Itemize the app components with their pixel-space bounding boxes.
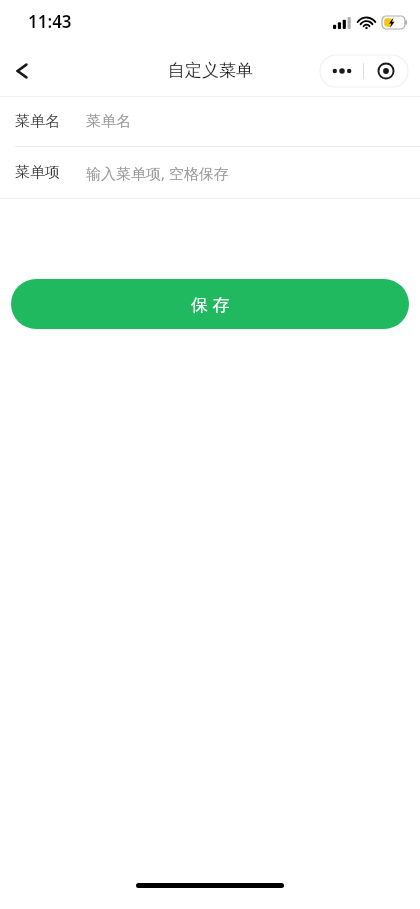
staticText: 保 存 — [191, 293, 230, 316]
button[interactable]: 保 存 — [11, 279, 409, 329]
button[interactable]: Back — [0, 49, 44, 93]
button[interactable]: Mini program menu — [320, 55, 408, 87]
button[interactable]: 菜单名 — [0, 97, 420, 146]
staticText: 菜单项 — [15, 163, 60, 182]
staticText: 输入菜单项, 空格保存 — [86, 163, 229, 183]
staticText: 菜单名 — [15, 112, 60, 131]
staticText: 11:43 — [28, 10, 72, 33]
staticText: 菜单名 — [86, 112, 131, 131]
button[interactable]: 菜单项 — [0, 147, 420, 198]
staticText: 自定义菜单 — [168, 60, 253, 81]
